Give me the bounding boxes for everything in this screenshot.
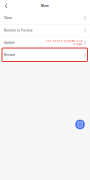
staticText: Update	[4, 41, 15, 44]
button[interactable]: Clear	[0, 12, 90, 24]
staticText: Restore to Factory	[4, 29, 33, 32]
button[interactable]: Restore to Factory	[0, 24, 90, 36]
button[interactable]: Update	[0, 37, 90, 49]
button[interactable]: Restart	[0, 49, 90, 61]
button[interactable]: Back	[0, 0, 12, 12]
staticText: The device program is up to date	[45, 39, 82, 46]
staticText: More	[41, 4, 49, 8]
staticText: Restart	[4, 53, 15, 57]
staticText: Clear	[4, 16, 12, 20]
button[interactable]: Add device	[75, 120, 85, 129]
